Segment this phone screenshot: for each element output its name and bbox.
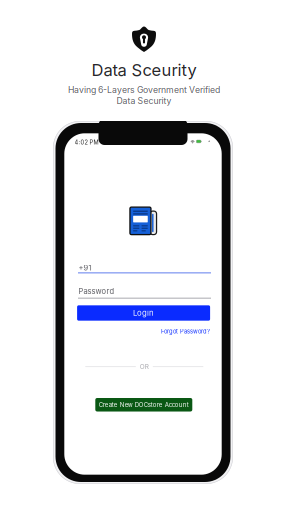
button[interactable]: Login — [77, 305, 210, 321]
button[interactable]: Forgot Password? — [77, 327, 210, 335]
staticText: +91 — [79, 263, 92, 272]
staticText: Data Sceurity — [91, 60, 196, 80]
staticText: OR — [140, 363, 149, 370]
staticText: Forgot Password? — [161, 328, 210, 335]
staticText: Password — [79, 287, 115, 296]
staticText: 4:02 PM — [75, 139, 99, 146]
button[interactable]: Create New DOCstore Account — [95, 398, 192, 411]
staticText: Login — [133, 308, 154, 318]
staticText: Data Security — [116, 95, 171, 106]
staticText: Create New DOCstore Account — [99, 401, 189, 408]
staticText: Having 6-Layers Government Verified — [68, 84, 220, 95]
